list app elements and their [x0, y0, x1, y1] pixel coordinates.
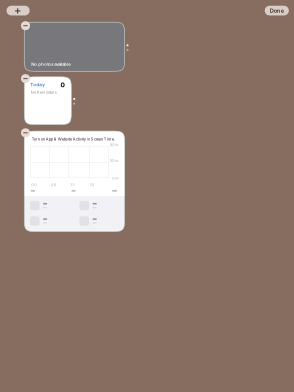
button[interactable]: Remove Widget — [21, 128, 30, 137]
button[interactable]: Remove Widget — [21, 21, 30, 30]
staticText: Turn on App & Website Activity in Screen… — [32, 137, 115, 141]
staticText: 0m — [112, 176, 119, 180]
button[interactable]: Turn on App & Website Activity in Screen… — [24, 131, 125, 232]
staticText: Done — [270, 7, 284, 14]
button[interactable]: No photos available — [24, 22, 125, 71]
button[interactable]: Add Widget — [6, 6, 30, 15]
staticText: 60m — [110, 142, 119, 147]
staticText: 12 — [70, 182, 74, 187]
staticText: 06 — [51, 182, 56, 187]
staticText: No photos available — [31, 61, 71, 67]
staticText: 00 — [31, 182, 37, 187]
button[interactable]: Remove Widget — [21, 74, 30, 83]
staticText: 18 — [90, 182, 94, 187]
staticText: 0 — [60, 81, 64, 89]
staticText: 30m — [110, 158, 119, 163]
button[interactable]: Today — [24, 77, 71, 125]
staticText: Today — [30, 82, 45, 87]
button[interactable]: Done — [265, 6, 289, 15]
staticText: No Reminders — [31, 90, 57, 95]
